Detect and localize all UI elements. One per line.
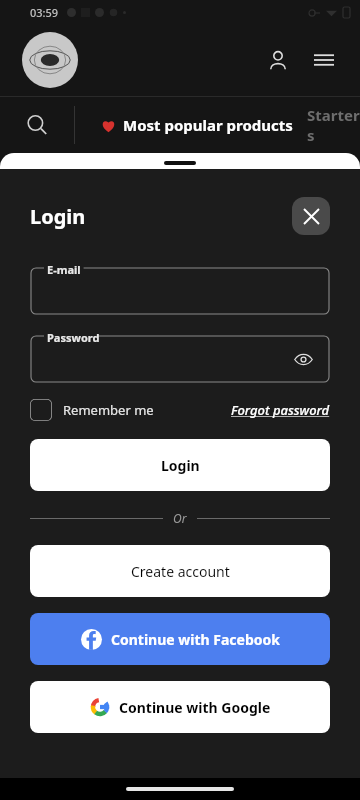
staticText: Remember me	[63, 401, 154, 419]
button[interactable]: Login	[30, 439, 330, 491]
button[interactable]: Continue with Google	[30, 681, 330, 733]
staticText: Continue with Facebook	[111, 630, 280, 649]
button[interactable]: Menu	[304, 40, 344, 80]
staticText: 03:59	[30, 5, 59, 20]
button[interactable]: Close	[292, 197, 330, 235]
staticText: Or	[173, 510, 187, 526]
staticText: Login	[161, 456, 200, 475]
button[interactable]: Create account	[30, 545, 330, 597]
button[interactable]: Search	[0, 97, 74, 153]
staticText: E-mail	[47, 262, 81, 277]
button[interactable]: Continue with Facebook	[30, 613, 330, 665]
staticText: Password	[47, 330, 100, 345]
staticText: Most popular products	[123, 115, 293, 135]
button[interactable]: Forgot password	[231, 401, 330, 419]
button[interactable]: Toggle password visibility	[286, 342, 320, 376]
staticText: Continue with Google	[119, 698, 271, 717]
button[interactable]: Starters	[307, 105, 360, 145]
button[interactable]: Account	[258, 40, 298, 80]
button[interactable]: Remember me	[30, 399, 154, 421]
staticText: Login	[30, 203, 86, 230]
staticText: Create account	[131, 562, 230, 581]
button[interactable]: Most popular products	[101, 115, 293, 135]
button[interactable]: Logo	[22, 32, 78, 88]
